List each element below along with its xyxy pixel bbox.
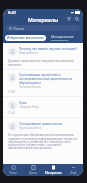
staticText: Организация проектной и исследовательско… <box>19 73 79 85</box>
button[interactable]: Дела <box>23 165 43 175</box>
button[interactable]: Методические материалы <box>49 35 83 41</box>
button[interactable]: Избранные материалы <box>5 35 46 41</box>
button[interactable]: Чаты <box>3 165 23 175</box>
staticText: Урок <box>19 101 27 105</box>
staticText: Избранные материалы <box>7 36 44 40</box>
staticText: Сидоров Пётр <box>19 105 39 109</box>
staticText: Кузнецова Анна <box>19 126 42 130</box>
staticText: Почему так важно изучать историю? <box>19 47 77 51</box>
staticText: Тестирование грамотности <box>19 122 62 126</box>
staticText: Духовно-нравственное направление развити… <box>8 59 78 66</box>
staticText: Ещё <box>70 171 77 175</box>
button[interactable]: Организация проектной и исследовательско… <box>3 73 83 89</box>
button[interactable]: Материалы <box>43 165 63 175</box>
staticText: 12:05 <box>8 90 16 94</box>
button[interactable]: Поиск <box>6 25 80 31</box>
staticText: На территории образовательной организаци… <box>8 133 78 149</box>
button[interactable]: Тестирование грамотности <box>3 122 83 131</box>
staticText: Дела <box>29 171 37 175</box>
staticText: Материалы <box>28 16 59 23</box>
staticText: Материалы <box>45 171 62 175</box>
staticText: Иванов Иван <box>19 51 38 55</box>
button[interactable]: Search <box>73 15 81 23</box>
button[interactable]: Почему так важно изучать историю? <box>3 47 83 56</box>
staticText: Методические материалы <box>51 35 81 41</box>
button[interactable]: Урок <box>3 101 83 110</box>
staticText: Поиск <box>13 26 25 31</box>
staticText: 9:41 <box>8 10 16 15</box>
staticText: Петрова Мария <box>19 85 41 89</box>
button[interactable]: Filter <box>65 15 73 23</box>
staticText: 11:20 <box>8 111 16 115</box>
staticText: Чаты <box>9 171 17 175</box>
button[interactable]: Ещё <box>63 165 83 175</box>
